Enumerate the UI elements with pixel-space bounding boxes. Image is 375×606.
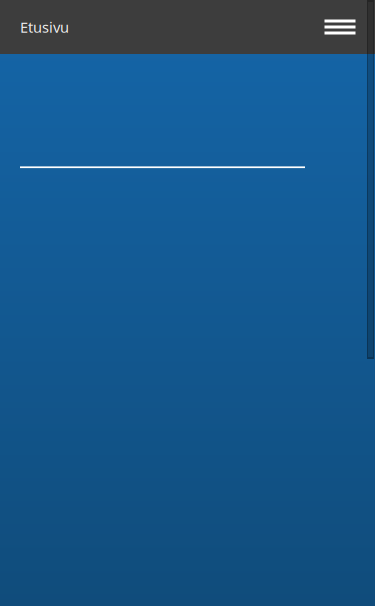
button[interactable]: Menu (318, 5, 362, 49)
button[interactable]: Etusivu (0, 0, 69, 55)
staticText: Etusivu (20, 17, 69, 37)
